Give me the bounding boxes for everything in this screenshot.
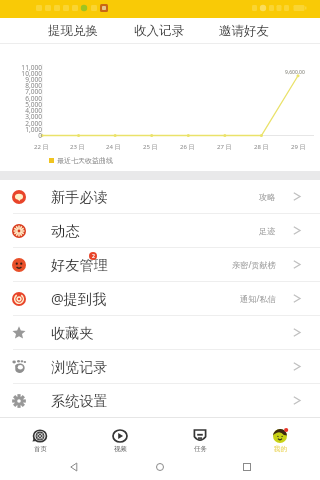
staticText: 提现兑换 [48, 23, 98, 39]
button[interactable]: 视频 [80, 418, 160, 453]
button[interactable]: 动态 [0, 214, 320, 247]
staticText: 26 日 [180, 143, 195, 151]
staticText: 2 [92, 253, 95, 260]
staticText: 29 日 [291, 143, 306, 151]
button[interactable]: 新手必读 [0, 180, 320, 213]
staticText: 邀请好友 [219, 23, 269, 39]
staticText: 9,000 [25, 75, 42, 84]
staticText: 3,000 [25, 112, 42, 121]
staticText: 22 日 [34, 143, 49, 151]
button[interactable]: Home [147, 454, 173, 480]
button[interactable]: 任务 [160, 418, 240, 453]
staticText: 首页 [34, 445, 47, 453]
staticText: 收藏夹 [51, 324, 94, 342]
staticText: 5,000 [25, 100, 42, 109]
button[interactable]: 提现兑换 [30, 23, 116, 39]
staticText: 11,000 [21, 63, 42, 72]
button[interactable]: @提到我 [0, 282, 320, 315]
button[interactable]: 首页 [0, 418, 80, 453]
staticText: 8,000 [25, 81, 42, 90]
staticText: 我的 [274, 445, 287, 453]
staticText: 6,000 [25, 94, 42, 103]
staticText: 新手必读 [51, 188, 108, 206]
button[interactable]: 收入记录 [116, 23, 201, 39]
staticText: 动态 [51, 222, 80, 240]
staticText: 任务 [194, 445, 207, 453]
button[interactable]: Recents [234, 454, 260, 480]
staticText: 0 [38, 131, 42, 140]
button[interactable]: 浏览记录 [0, 350, 320, 383]
staticText: 亲密/贡献榜 [232, 259, 276, 270]
button[interactable]: Back [61, 454, 87, 480]
staticText: 4,000 [25, 106, 42, 115]
staticText: 10,000 [21, 69, 42, 78]
button[interactable]: 收藏夹 [0, 316, 320, 349]
staticText: 24 日 [106, 143, 121, 151]
staticText: 好友管理 [51, 256, 108, 274]
staticText: 攻略 [259, 192, 276, 202]
staticText: 7,000 [25, 87, 42, 96]
staticText: 25 日 [143, 143, 158, 151]
staticText: 视频 [114, 445, 127, 453]
staticText: 2,000 [25, 119, 42, 128]
staticText: 23 日 [70, 143, 85, 151]
staticText: 最近七天收益曲线 [57, 156, 113, 165]
button[interactable]: 我的 [240, 418, 320, 453]
staticText: 通知/私信 [240, 293, 276, 304]
staticText: 收入记录 [134, 23, 184, 39]
staticText: 9,600.00 [285, 69, 305, 76]
button[interactable]: 邀请好友 [201, 23, 286, 39]
staticText: @提到我 [51, 289, 107, 308]
button[interactable]: 好友管理 [0, 248, 320, 281]
staticText: 系统设置 [51, 392, 108, 410]
staticText: 浏览记录 [51, 358, 108, 376]
staticText: 28 日 [254, 143, 269, 151]
staticText: 27 日 [217, 143, 232, 151]
staticText: 足迹 [259, 226, 276, 236]
staticText: 1,000 [25, 125, 42, 134]
button[interactable]: 系统设置 [0, 384, 320, 417]
